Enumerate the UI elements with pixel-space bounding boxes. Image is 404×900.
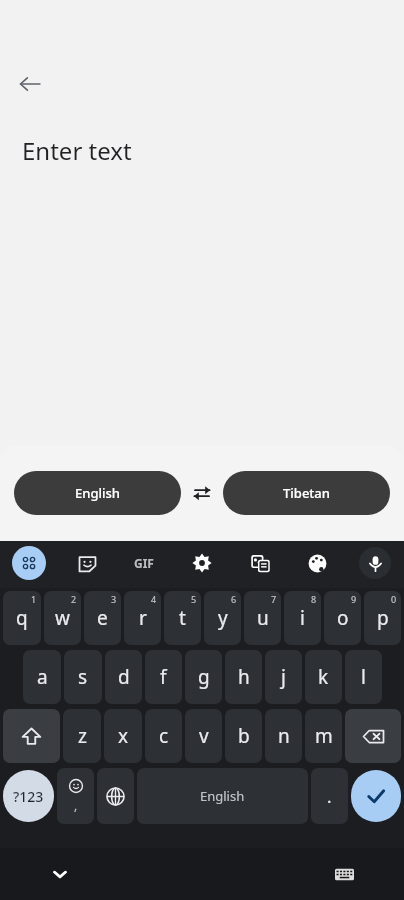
staticText: v [199, 723, 209, 749]
staticText: e [97, 605, 108, 631]
button[interactable]: b [225, 709, 262, 763]
button[interactable]: a [23, 650, 61, 704]
staticText: 9 [351, 593, 357, 605]
button[interactable]: p [364, 591, 401, 645]
button[interactable]: m [305, 709, 342, 763]
button[interactable]: . [311, 768, 348, 824]
button[interactable]: Switch keyboard [324, 854, 364, 894]
staticText: i [300, 605, 305, 631]
button[interactable]: t [164, 591, 201, 645]
staticText: l [361, 664, 366, 690]
button[interactable]: Stickers [64, 541, 110, 585]
button[interactable]: c [145, 709, 182, 763]
staticText: , [74, 797, 78, 813]
button[interactable]: y [204, 591, 241, 645]
staticText: z [78, 723, 87, 749]
staticText: 8 [311, 593, 317, 605]
staticText: English [75, 484, 120, 502]
button[interactable]: English [14, 471, 181, 515]
staticText: 3 [111, 593, 117, 605]
staticText: r [139, 605, 147, 631]
staticText: a [37, 664, 48, 690]
staticText: 2 [71, 593, 77, 605]
staticText: w [55, 605, 70, 631]
button[interactable]: o [324, 591, 361, 645]
button[interactable]: k [305, 650, 342, 704]
staticText: GIF [134, 555, 154, 571]
staticText: 5 [191, 593, 197, 605]
button[interactable]: i [284, 591, 321, 645]
button[interactable]: Tibetan [223, 471, 390, 515]
button[interactable]: Shift [3, 709, 60, 763]
button[interactable]: s [64, 650, 102, 704]
staticText: n [278, 723, 290, 749]
button[interactable]: Themes [294, 541, 340, 585]
button[interactable]: f [145, 650, 182, 704]
staticText: Enter text [22, 134, 132, 167]
button[interactable]: Settings [179, 541, 225, 585]
staticText: m [315, 723, 333, 749]
button[interactable]: g [185, 650, 222, 704]
button[interactable]: z [63, 709, 101, 763]
button[interactable]: e [84, 591, 121, 645]
staticText: c [159, 723, 169, 749]
staticText: s [78, 664, 88, 690]
staticText: u [257, 605, 269, 631]
staticText: ?123 [13, 787, 44, 806]
button[interactable]: ?123 [3, 770, 54, 822]
staticText: 7 [271, 593, 277, 605]
staticText: h [238, 664, 250, 690]
staticText: Tibetan [283, 484, 330, 502]
staticText: k [318, 664, 329, 690]
staticText: . [327, 785, 332, 808]
button[interactable]: q [3, 591, 41, 645]
button[interactable]: Apps [6, 541, 52, 585]
button[interactable]: h [225, 650, 262, 704]
button[interactable]: n [265, 709, 302, 763]
staticText: o [337, 605, 349, 631]
button[interactable]: j [265, 650, 302, 704]
button[interactable]: r [124, 591, 161, 645]
button[interactable]: x [104, 709, 142, 763]
button[interactable]: Back [8, 62, 52, 106]
button[interactable]: w [44, 591, 81, 645]
button[interactable]: Enter [351, 770, 401, 822]
button[interactable]: GIF [121, 541, 167, 585]
button[interactable]: Emoji [57, 768, 94, 824]
staticText: y [218, 605, 228, 631]
button[interactable]: Change language [97, 768, 134, 824]
staticText: q [16, 605, 28, 631]
staticText: g [198, 664, 210, 690]
button[interactable]: Backspace [345, 709, 401, 763]
staticText: j [281, 664, 286, 690]
staticText: b [238, 723, 250, 749]
staticText: d [118, 664, 130, 690]
button[interactable]: Voice input [352, 541, 398, 585]
staticText: f [160, 664, 167, 690]
button[interactable]: d [105, 650, 142, 704]
staticText: t [179, 605, 186, 631]
button[interactable]: v [185, 709, 222, 763]
button[interactable]: English [137, 768, 308, 824]
button[interactable]: u [244, 591, 281, 645]
button[interactable]: Translate [237, 541, 283, 585]
button[interactable]: Hide keyboard [40, 854, 80, 894]
button[interactable]: l [345, 650, 382, 704]
button[interactable]: Swap languages [181, 473, 223, 513]
staticText: 6 [231, 593, 237, 605]
staticText: p [377, 605, 389, 631]
staticText: 1 [31, 593, 37, 605]
staticText: 4 [151, 593, 157, 605]
staticText: English [200, 787, 245, 805]
staticText: 0 [391, 593, 397, 605]
staticText: x [118, 723, 129, 749]
